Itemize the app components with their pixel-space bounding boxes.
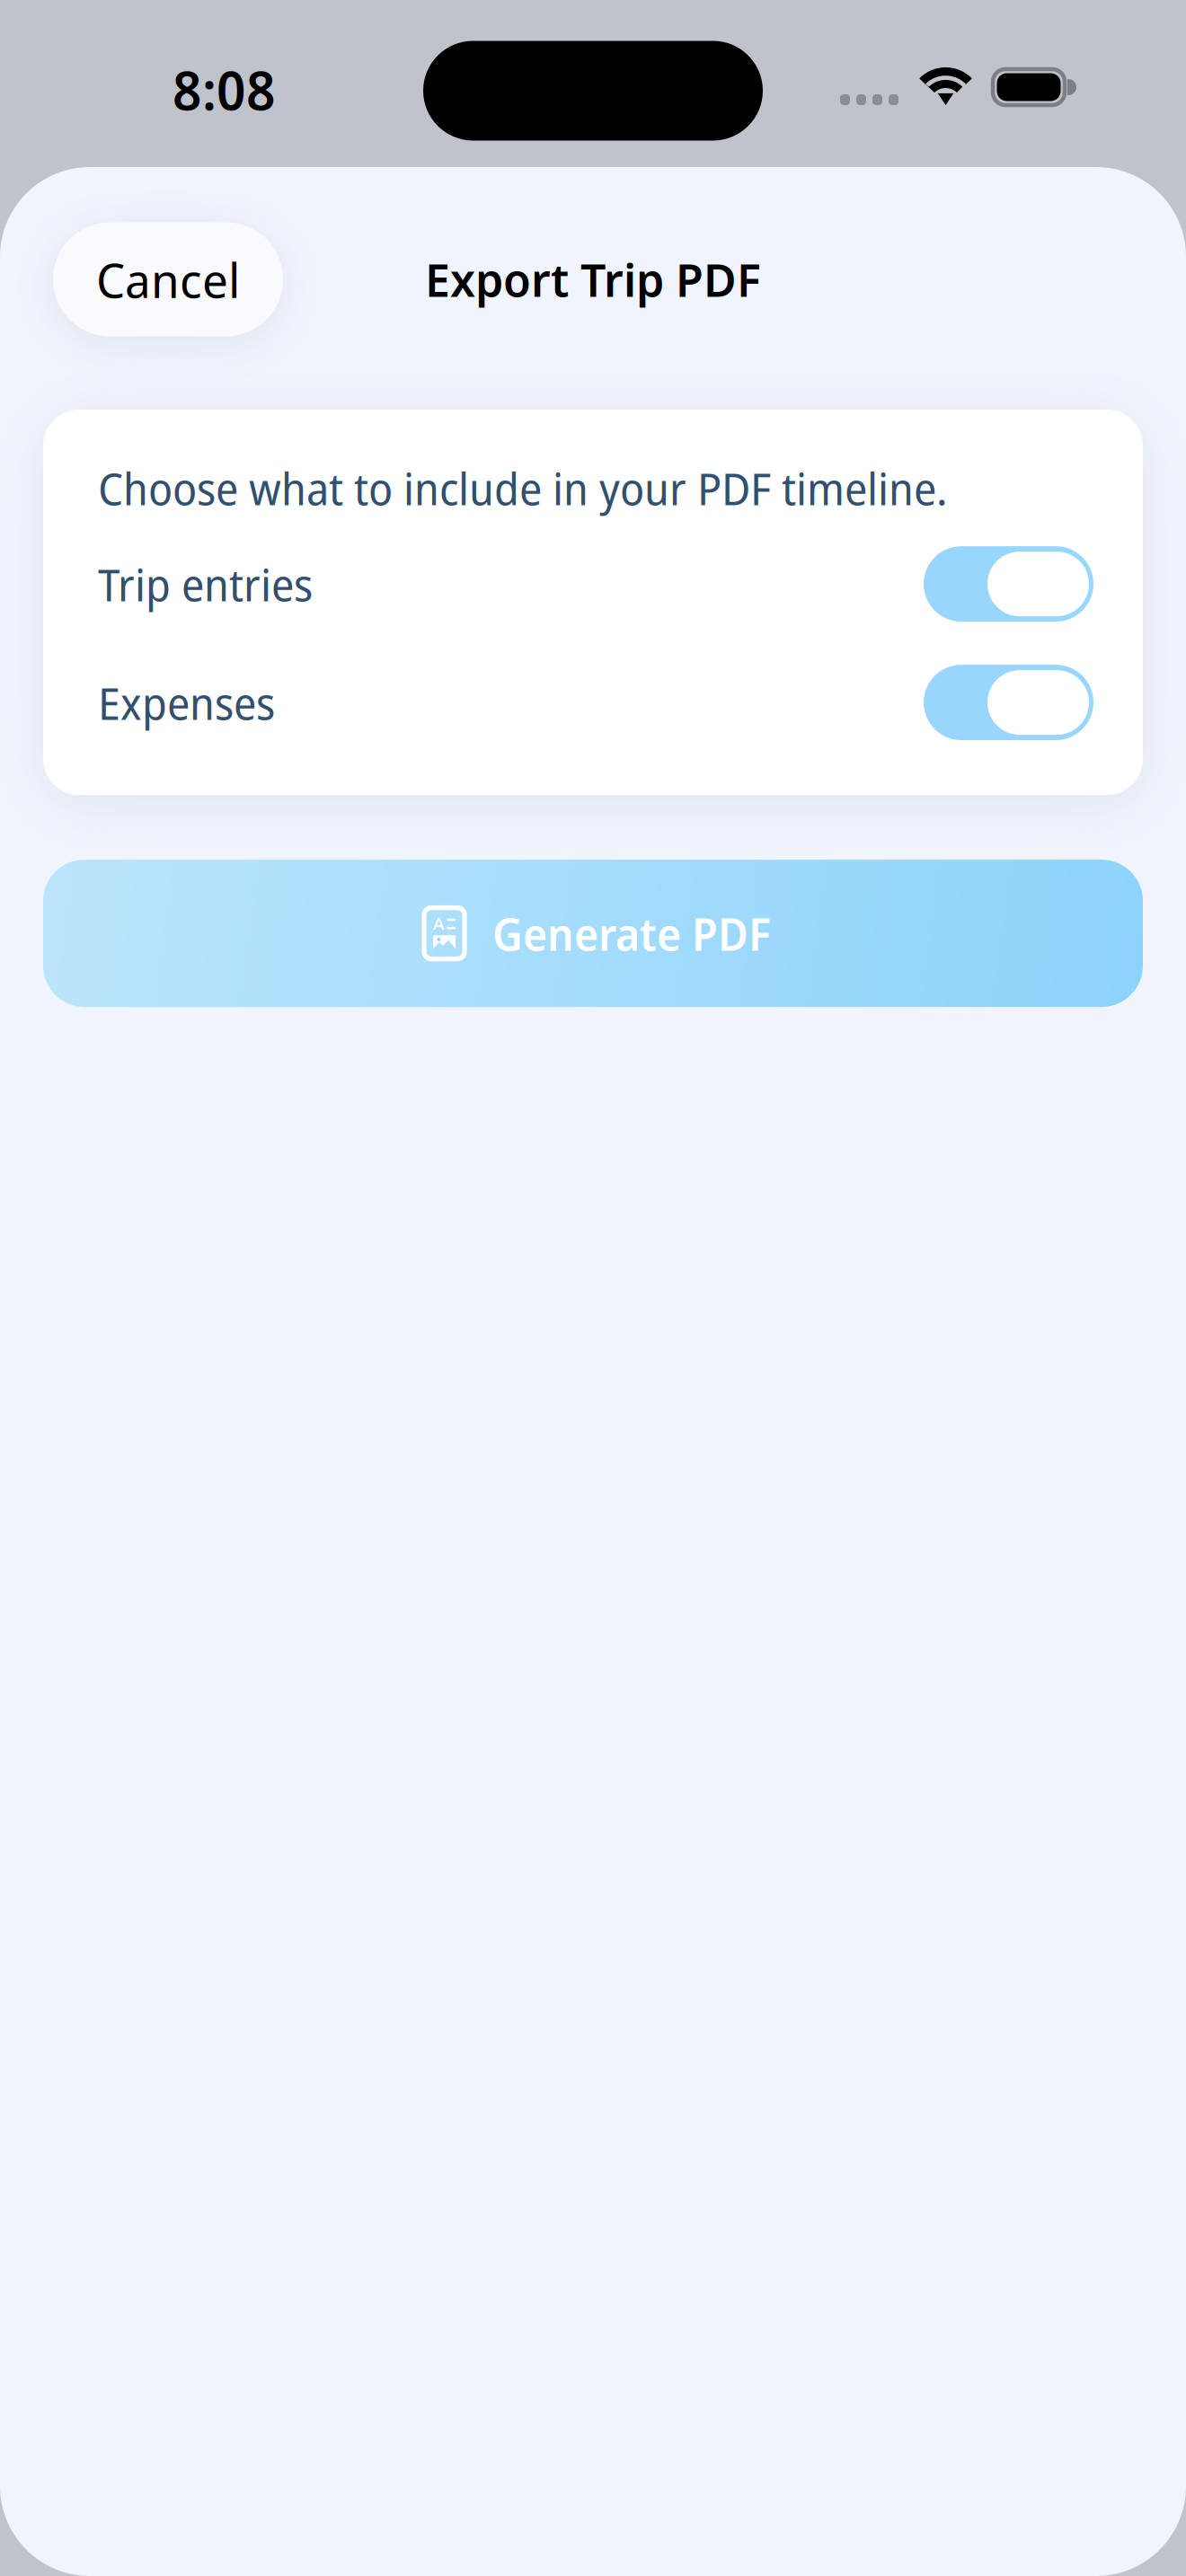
staticText: Cancel — [96, 247, 240, 312]
button[interactable]: Generate PDF — [43, 860, 1143, 1007]
staticText: Generate PDF — [492, 903, 771, 964]
button[interactable]: Trip entries — [98, 546, 1093, 622]
button[interactable]: Cancel — [53, 222, 283, 336]
button[interactable]: Expenses — [98, 665, 1093, 740]
staticText: Trip entries — [98, 553, 313, 615]
staticText: Choose what to include in your PDF timel… — [98, 457, 948, 518]
staticText: Export Trip PDF — [425, 249, 761, 310]
staticText: Expenses — [98, 672, 275, 733]
staticText: 8:08 — [173, 54, 276, 126]
